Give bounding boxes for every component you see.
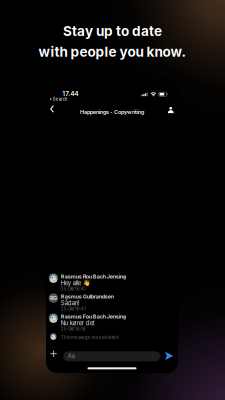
staticText: Sådan!: [61, 299, 80, 307]
button[interactable]: Aa: [63, 351, 160, 361]
staticText: Happenings - Copywriting: [80, 109, 144, 115]
staticText: Aa: [68, 353, 75, 360]
staticText: 25 Okt 16:41: [61, 286, 86, 291]
button[interactable]: Back: [47, 102, 57, 115]
staticText: Search: [53, 96, 68, 102]
staticText: Hey alle 👋: [61, 279, 90, 287]
staticText: 17.44: [62, 90, 78, 97]
staticText: 25 Okt 16:16: [61, 326, 86, 331]
staticText: Stay up to date: [63, 23, 162, 39]
staticText: Nu kører det: [61, 319, 95, 327]
staticText: Rasmus Gulbrandsen: [61, 293, 114, 300]
staticText: with people you know.: [38, 44, 186, 60]
button[interactable]: Add attachment: [47, 348, 60, 360]
staticText: Rasmus Fou Bach Jensing: [61, 313, 126, 320]
staticText: This message was deleted: [61, 334, 119, 340]
staticText: 25 Okt 16:47: [61, 306, 86, 311]
button[interactable]: Group members: [165, 104, 177, 116]
button[interactable]: Send: [162, 349, 176, 362]
staticText: Rasmus Rou Bach Jensing: [61, 273, 126, 280]
staticText: RG: [50, 295, 57, 301]
